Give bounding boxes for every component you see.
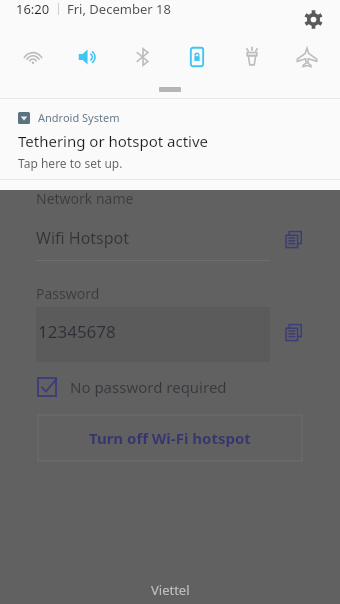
button[interactable]: Wi-Fi xyxy=(14,38,52,76)
staticText: Network name xyxy=(36,189,134,208)
staticText: 12345678 xyxy=(38,320,116,343)
staticText: Fri, December 18 xyxy=(67,0,171,18)
staticText: Viettel xyxy=(151,581,190,599)
button[interactable]: Settings xyxy=(294,0,332,38)
button[interactable]: Flashlight xyxy=(233,38,271,76)
staticText: Tethering or hotspot active xyxy=(18,131,209,151)
button[interactable]: Turn off Wi-Fi hotspot xyxy=(38,415,302,461)
button[interactable]: No password required xyxy=(30,372,227,402)
button[interactable]: Auto rotate lock xyxy=(178,38,216,76)
button[interactable]: Airplane mode xyxy=(288,38,326,76)
staticText: Tap here to set up. xyxy=(18,155,123,171)
button[interactable]: Copy password xyxy=(275,314,313,352)
staticText: Wifi Hotspot xyxy=(36,227,130,249)
button[interactable]: Sound xyxy=(69,38,107,76)
button[interactable]: Bluetooth xyxy=(124,38,162,76)
button[interactable]: Copy network name xyxy=(275,221,313,259)
staticText: Password xyxy=(36,284,100,303)
button[interactable]: Android System xyxy=(0,99,340,150)
staticText: No password required xyxy=(70,377,227,397)
staticText: Android System xyxy=(38,110,120,125)
staticText: Turn off Wi-Fi hotspot xyxy=(89,428,251,448)
staticText: 16:20 xyxy=(16,0,50,18)
